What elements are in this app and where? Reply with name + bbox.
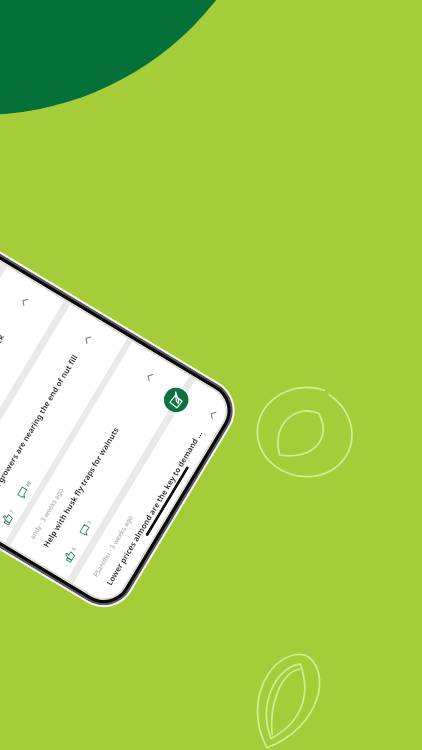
button[interactable]: PSandhu · 3 weeks ago (73, 379, 234, 607)
button[interactable]: sam · 3 weeks ago (0, 304, 127, 542)
staticText: Lower prices almond are the key to deman… (104, 424, 207, 587)
staticText: sam · 3 weeks ago (0, 450, 2, 503)
button[interactable]: Compose new post (159, 383, 193, 417)
staticText: andy · 3 weeks ago (28, 486, 66, 541)
staticText: 7 (8, 508, 16, 515)
staticText: Pistachio prices holding steady this wee… (0, 311, 19, 474)
staticText: PSandhu · 3 weeks ago (91, 513, 135, 579)
button[interactable]: kev · 2 weeks ago (0, 266, 64, 505)
staticText: Almond growers are nearing the end of nu… (0, 349, 82, 512)
staticText: 38 (24, 480, 33, 488)
staticText: Help with husk fly traps for walnuts (41, 386, 144, 549)
staticText: 6 (70, 546, 78, 552)
staticText: 7 (86, 520, 94, 526)
button[interactable]: andy · 3 weeks ago (10, 341, 190, 580)
